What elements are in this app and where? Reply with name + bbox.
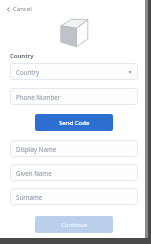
button[interactable]: Surname [10, 188, 138, 205]
button[interactable]: Cancel [3, 3, 35, 15]
staticText: Continue [61, 221, 88, 229]
staticText: Display Name [16, 145, 57, 153]
staticText: Surname [16, 193, 43, 201]
button[interactable]: Country [10, 63, 138, 80]
staticText: Country [16, 68, 40, 76]
button[interactable]: Continue [35, 216, 113, 233]
staticText: Send Code [59, 119, 90, 127]
button[interactable]: Display Name [10, 140, 138, 157]
button[interactable]: Given Name [10, 164, 138, 181]
staticText: Phone Number [16, 93, 61, 101]
button[interactable]: Send Code [35, 114, 113, 131]
button[interactable]: Phone Number [10, 88, 138, 105]
staticText: Given Name [16, 169, 52, 177]
staticText: Cancel [13, 5, 32, 13]
staticText: Country [10, 52, 34, 60]
